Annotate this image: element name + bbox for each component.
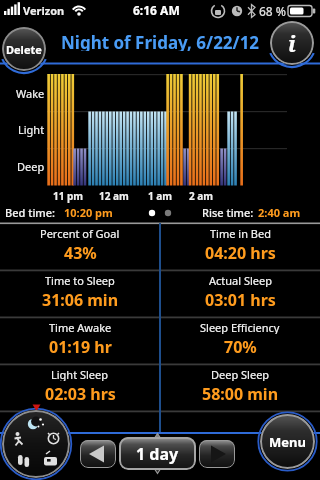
button[interactable]: Menu [260, 414, 315, 469]
staticText: 1 day [136, 443, 179, 465]
staticText: Rise time: [202, 205, 254, 220]
staticText: 11 pm [53, 189, 84, 203]
staticText: i [288, 28, 296, 58]
staticText: 68 % [259, 3, 287, 19]
staticText: 1 am [148, 189, 173, 203]
staticText: 01:19 hr [49, 336, 112, 356]
staticText: Bed time: [5, 205, 56, 220]
staticText: Night of Friday, 6/22/12 [61, 31, 260, 51]
button[interactable]: i [270, 21, 314, 65]
staticText: Actual Sleep [209, 273, 272, 287]
staticText: 43% [64, 242, 97, 262]
staticText: Wake [16, 86, 45, 101]
staticText: 31:06 min [42, 289, 119, 309]
button[interactable]: 1 day [119, 437, 196, 470]
staticText: 02:03 hrs [45, 383, 116, 403]
staticText: Verizon [23, 3, 65, 18]
staticText: Deep Sleep [211, 367, 270, 381]
staticText: 12 am [99, 189, 129, 203]
staticText: 04:20 hrs [205, 242, 276, 262]
staticText: Time to Sleep [45, 273, 115, 287]
staticText: 03:01 hrs [205, 289, 276, 309]
staticText: 2:40 am [258, 205, 301, 220]
staticText: Delete [6, 42, 42, 57]
staticText: 70% [224, 336, 257, 356]
staticText: Menu [269, 433, 306, 451]
staticText: 2 am [189, 189, 214, 203]
button[interactable] [2, 410, 70, 478]
staticText: Light Sleep [51, 367, 109, 381]
staticText: Percent of Goal [40, 226, 120, 240]
staticText: 58:00 min [202, 383, 279, 403]
button[interactable]: Delete [2, 27, 46, 71]
staticText: Deep [17, 159, 45, 174]
staticText: 10:20 pm [64, 205, 113, 220]
staticText: Time Awake [49, 320, 112, 334]
button[interactable] [80, 440, 116, 468]
staticText: Light [18, 122, 45, 137]
staticText: Time in Bed [210, 226, 271, 240]
staticText: Sleep Efficiency [200, 320, 280, 334]
staticText: 6:16 AM [133, 2, 180, 18]
button[interactable] [199, 440, 235, 468]
